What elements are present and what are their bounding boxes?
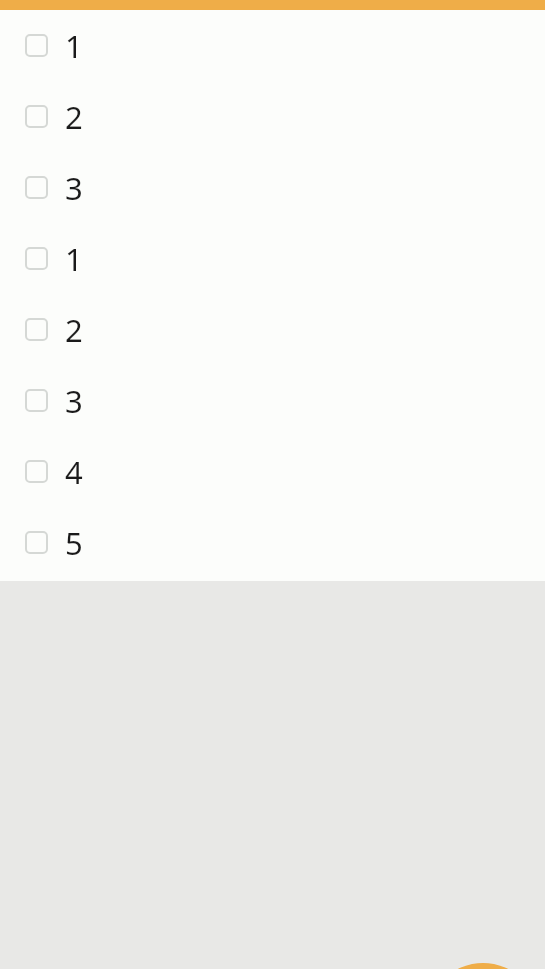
button[interactable]: 2: [0, 81, 545, 152]
button[interactable]: 1: [0, 10, 545, 81]
button[interactable]: Add: [427, 963, 539, 969]
staticText: 1: [65, 238, 83, 280]
staticText: 3: [65, 167, 83, 209]
button[interactable]: 3: [0, 152, 545, 223]
staticText: 4: [65, 451, 83, 493]
staticText: 2: [65, 96, 83, 138]
button[interactable]: 4: [0, 436, 545, 507]
staticText: 2: [65, 309, 83, 351]
button[interactable]: 1: [0, 223, 545, 294]
staticText: 3: [65, 380, 83, 422]
staticText: 1: [65, 25, 83, 67]
button[interactable]: 5: [0, 507, 545, 578]
button[interactable]: 2: [0, 294, 545, 365]
staticText: 5: [65, 522, 83, 564]
button[interactable]: 3: [0, 365, 545, 436]
